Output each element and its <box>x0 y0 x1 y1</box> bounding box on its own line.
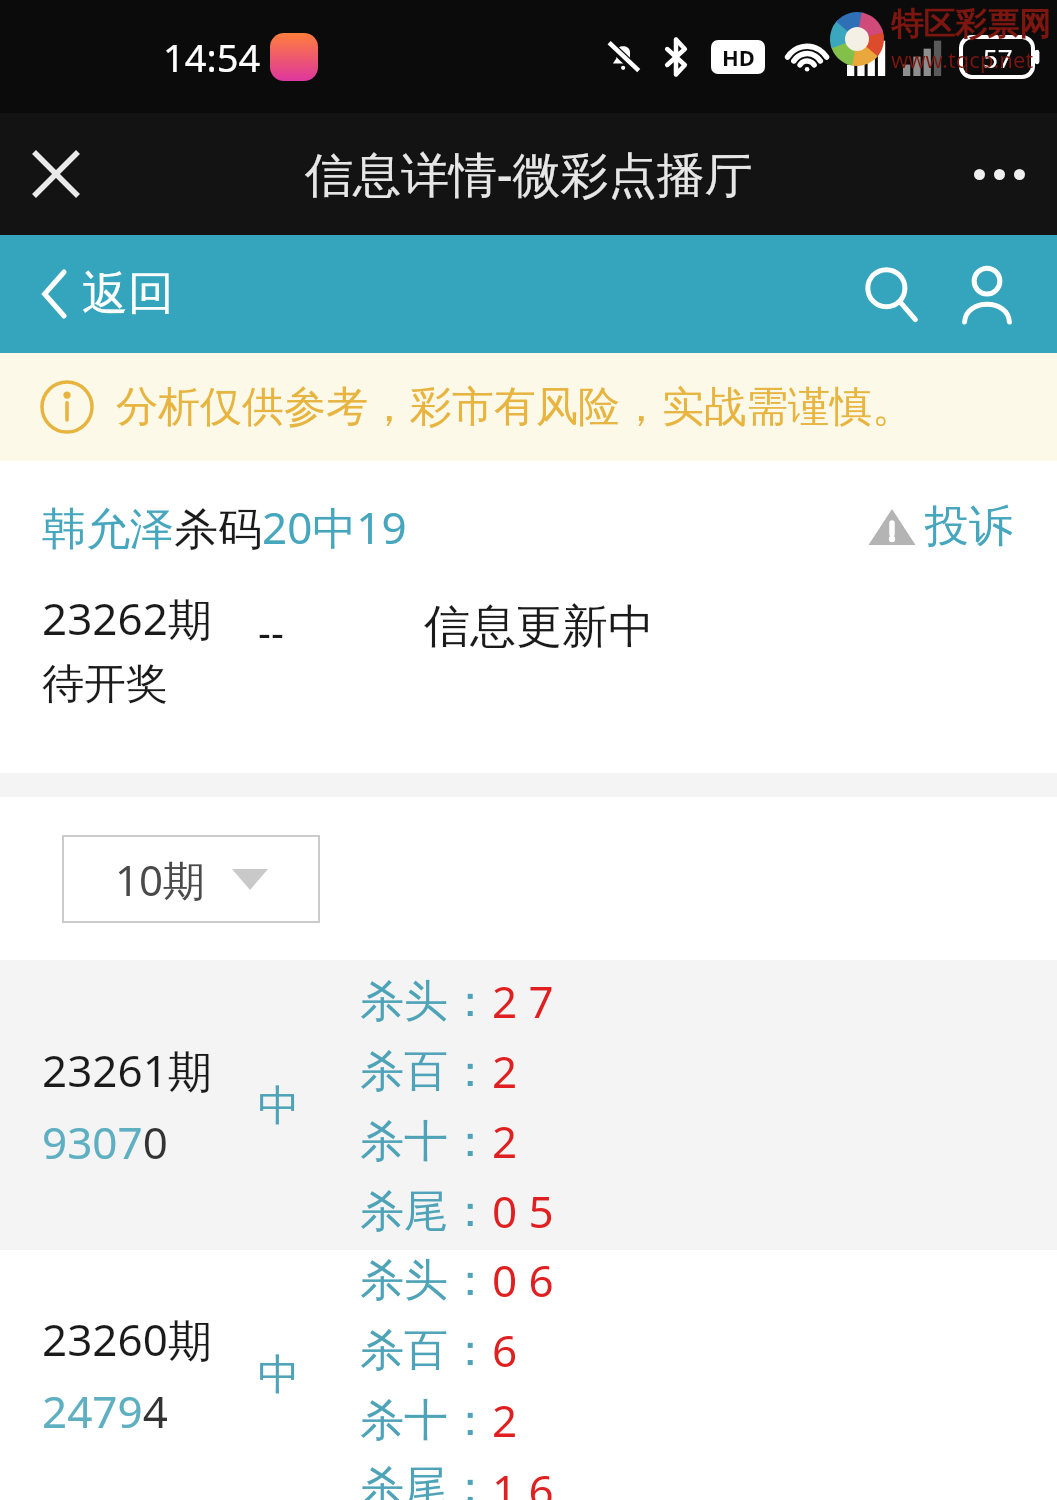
staticText: 杀头： <box>360 1253 492 1308</box>
staticText: 分析仅供参考，彩市有风险，实战需谨慎。 <box>116 381 914 434</box>
staticText: 杀十： <box>360 1393 492 1448</box>
staticText: 杀尾： <box>360 1460 492 1500</box>
staticText: 57 <box>983 40 1013 75</box>
button[interactable]: 返回 <box>36 259 180 329</box>
button[interactable]: 23261期 <box>0 962 1057 1250</box>
staticText: 23262期 <box>42 588 212 648</box>
staticText: 2 <box>492 1390 518 1450</box>
button[interactable]: More options <box>963 138 1035 210</box>
staticText: 信息更新中 <box>424 598 654 656</box>
staticText: 返回 <box>82 265 174 323</box>
button[interactable]: Close <box>20 138 92 210</box>
staticText: 93070 <box>42 1112 168 1172</box>
staticText: 0 6 <box>492 1250 554 1310</box>
staticText: 1 6 <box>492 1460 554 1500</box>
staticText: 杀百： <box>360 1044 492 1099</box>
staticText: 2 7 <box>492 971 554 1031</box>
staticText: 特区彩票网 <box>891 4 1051 44</box>
staticText: 2 <box>492 1111 518 1171</box>
button[interactable]: 23260期 <box>0 1250 1057 1500</box>
staticText: 中 <box>258 1349 300 1402</box>
staticText: 杀尾： <box>360 1184 492 1239</box>
staticText: 23261期 <box>42 1040 212 1100</box>
staticText: 中 <box>258 1080 300 1133</box>
button[interactable]: 投诉 <box>863 495 1017 558</box>
staticText: 0 5 <box>492 1181 554 1241</box>
staticText: 23260期 <box>42 1309 212 1369</box>
button[interactable]: Search <box>851 254 931 334</box>
staticText: 24794 <box>42 1381 168 1441</box>
staticText: 2 <box>492 1041 518 1101</box>
staticText: -- <box>258 604 284 658</box>
staticText: 待开奖 <box>42 658 168 711</box>
button[interactable]: Profile <box>947 254 1027 334</box>
staticText: 杀百： <box>360 1323 492 1378</box>
button[interactable]: 10期 <box>62 835 320 923</box>
staticText: HD <box>722 42 755 72</box>
staticText: 杀十： <box>360 1114 492 1169</box>
staticText: 10期 <box>115 851 206 908</box>
staticText: 信息详情-微彩点播厅 <box>305 141 753 207</box>
staticText: 14:54 <box>163 31 261 83</box>
staticText: 韩允泽杀码20中19 <box>42 497 407 557</box>
staticText: 投诉 <box>925 499 1013 554</box>
staticText: www.tqcp.net <box>891 44 1034 74</box>
staticText: 6 <box>492 1320 518 1380</box>
staticText: 杀头： <box>360 974 492 1029</box>
